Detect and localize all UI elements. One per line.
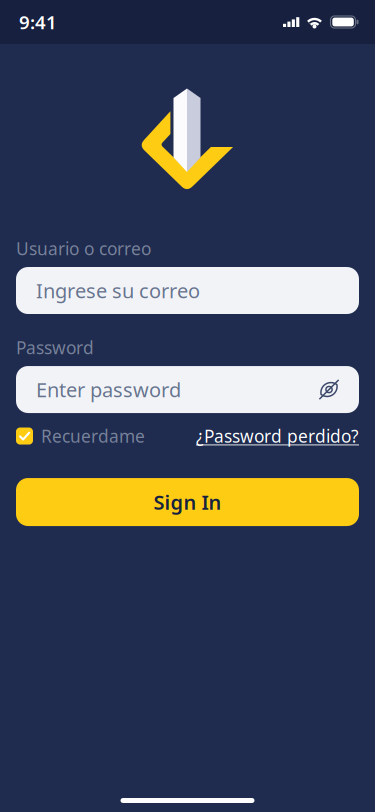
staticText: ¿Password perdido? (196, 424, 359, 447)
button[interactable]: ¿Password perdido? (196, 424, 359, 447)
staticText: Recuerdame (41, 424, 145, 447)
button[interactable]: Recuerdame (16, 424, 145, 447)
staticText: Ingrese su correo (36, 277, 200, 304)
button[interactable]: Sign In (16, 478, 359, 526)
staticText: Enter password (36, 376, 181, 403)
staticText: Usuario o correo (16, 237, 151, 260)
button[interactable]: Ingrese su correo (16, 267, 359, 314)
staticText: Sign In (153, 489, 221, 515)
staticText: 9:41 (19, 10, 57, 34)
button[interactable]: Enter password (16, 366, 359, 413)
staticText: Password (16, 336, 94, 359)
